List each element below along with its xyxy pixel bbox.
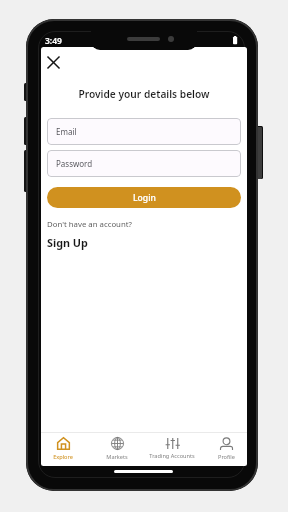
button[interactable]: Close bbox=[42, 51, 65, 74]
staticText: Markets bbox=[106, 453, 128, 461]
staticText: Trading Accounts bbox=[149, 452, 195, 460]
button[interactable]: Login bbox=[47, 187, 241, 208]
staticText: Login bbox=[133, 192, 156, 204]
staticText: Explore bbox=[53, 453, 73, 461]
staticText: Don't have an account? bbox=[47, 219, 132, 230]
staticText: Password bbox=[56, 158, 93, 169]
button[interactable]: Password bbox=[47, 150, 241, 177]
button[interactable]: Profile bbox=[201, 433, 247, 464]
staticText: 3:49 bbox=[45, 35, 62, 47]
button[interactable]: Markets bbox=[92, 433, 142, 464]
staticText: Profile bbox=[218, 453, 235, 461]
button[interactable]: Sign Up bbox=[47, 235, 88, 250]
staticText: Provide your details below bbox=[41, 87, 247, 101]
button[interactable]: Explore bbox=[41, 433, 88, 464]
staticText: Email bbox=[56, 126, 77, 137]
staticText: Sign Up bbox=[47, 235, 88, 250]
button[interactable]: Trading Accounts bbox=[147, 433, 197, 464]
button[interactable]: Email bbox=[47, 118, 241, 145]
